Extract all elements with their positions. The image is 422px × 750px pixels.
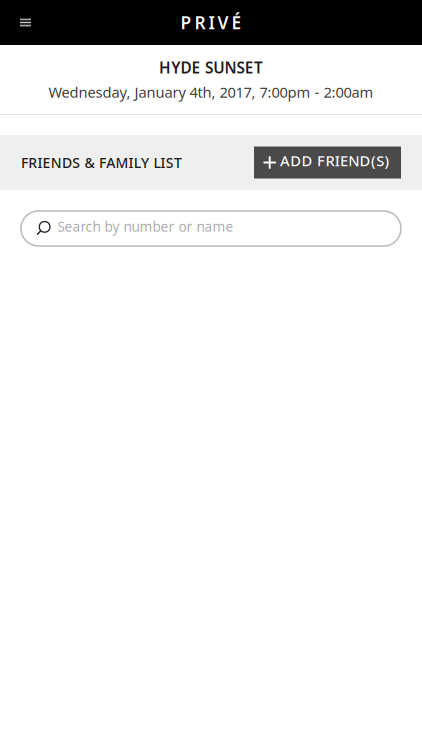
staticText: HYDE SUNSET (159, 57, 263, 78)
staticText: Search by number or name (57, 217, 233, 236)
button[interactable]: Search by number or name (21, 211, 401, 246)
button[interactable]: ADD FRIEND(S) (254, 146, 401, 178)
staticText: Wednesday, January 4th, 2017, 7:00pm - 2… (48, 82, 373, 102)
staticText: FRIENDS & FAMILY LIST (21, 153, 182, 172)
button[interactable]: Menu (0, 0, 51, 45)
staticText: PRIVÉ (180, 11, 241, 34)
staticText: ADD FRIEND(S) (280, 150, 389, 170)
